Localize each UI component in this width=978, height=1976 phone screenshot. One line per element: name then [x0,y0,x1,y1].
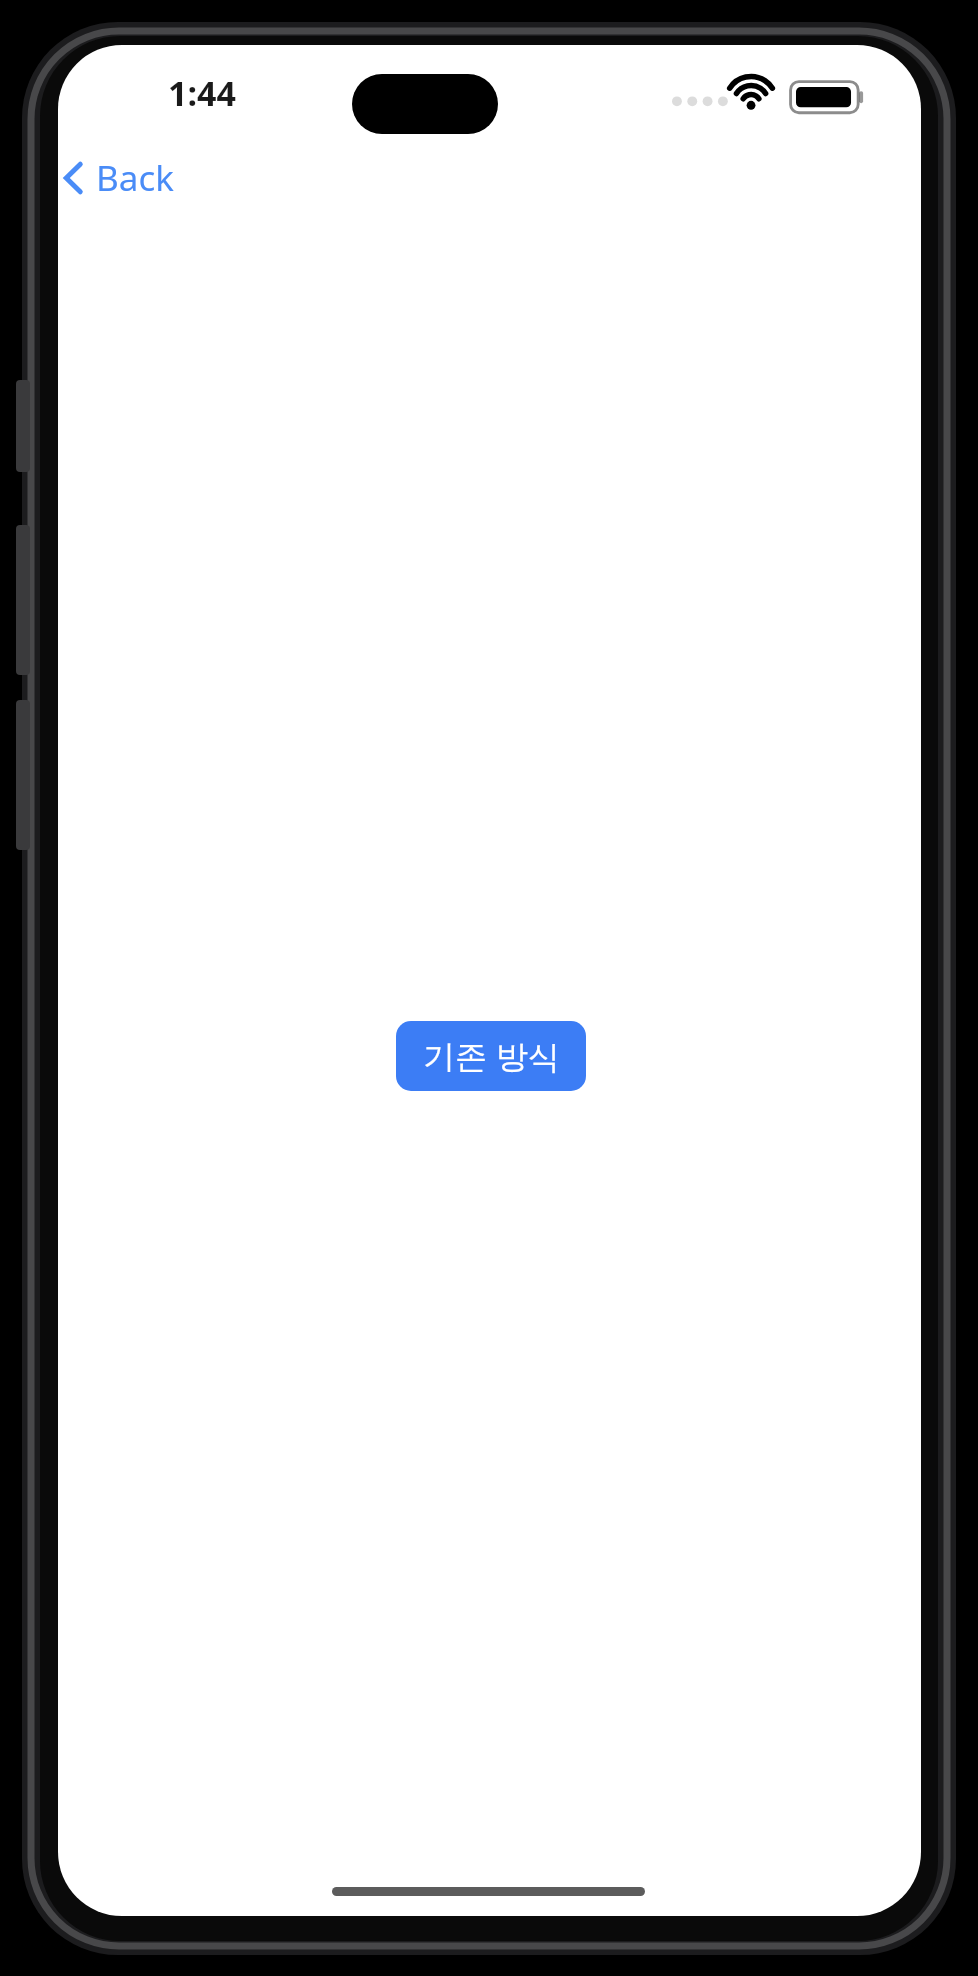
staticText: Back [96,154,174,202]
staticText: 1:44 [168,70,236,116]
button[interactable]: Back [52,148,182,208]
staticText: 기존 방식 [423,1034,560,1078]
button[interactable]: 기존 방식 [396,1021,586,1091]
